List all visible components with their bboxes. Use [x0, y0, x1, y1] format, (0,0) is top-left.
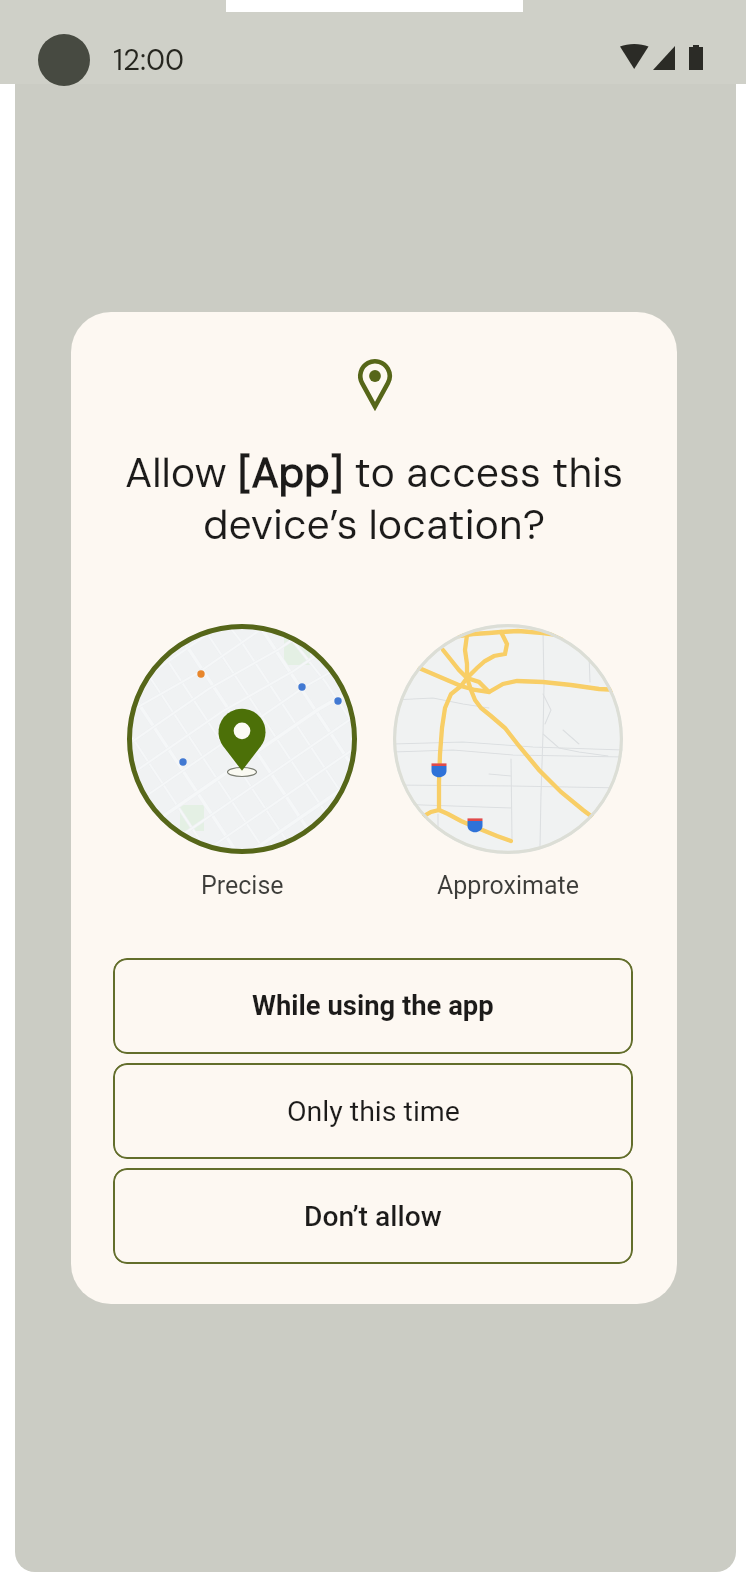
button[interactable]: Only this time — [113, 1063, 633, 1159]
staticText: While using the app — [252, 990, 494, 1022]
button[interactable]: Precise — [127, 624, 357, 900]
button[interactable]: Don’t allow — [113, 1168, 633, 1264]
button[interactable]: Approximate — [393, 624, 623, 900]
staticText: 12:00 — [113, 41, 185, 79]
button[interactable]: While using the app — [113, 958, 633, 1054]
staticText: Don’t allow — [304, 1200, 442, 1233]
staticText: Approximate — [437, 871, 580, 900]
staticText: Precise — [201, 871, 284, 900]
other: Wi-Fi, signal and battery status — [620, 45, 704, 70]
staticText: Allow [App] to access this device’s loca… — [71, 446, 677, 552]
staticText: Only this time — [287, 1095, 460, 1128]
